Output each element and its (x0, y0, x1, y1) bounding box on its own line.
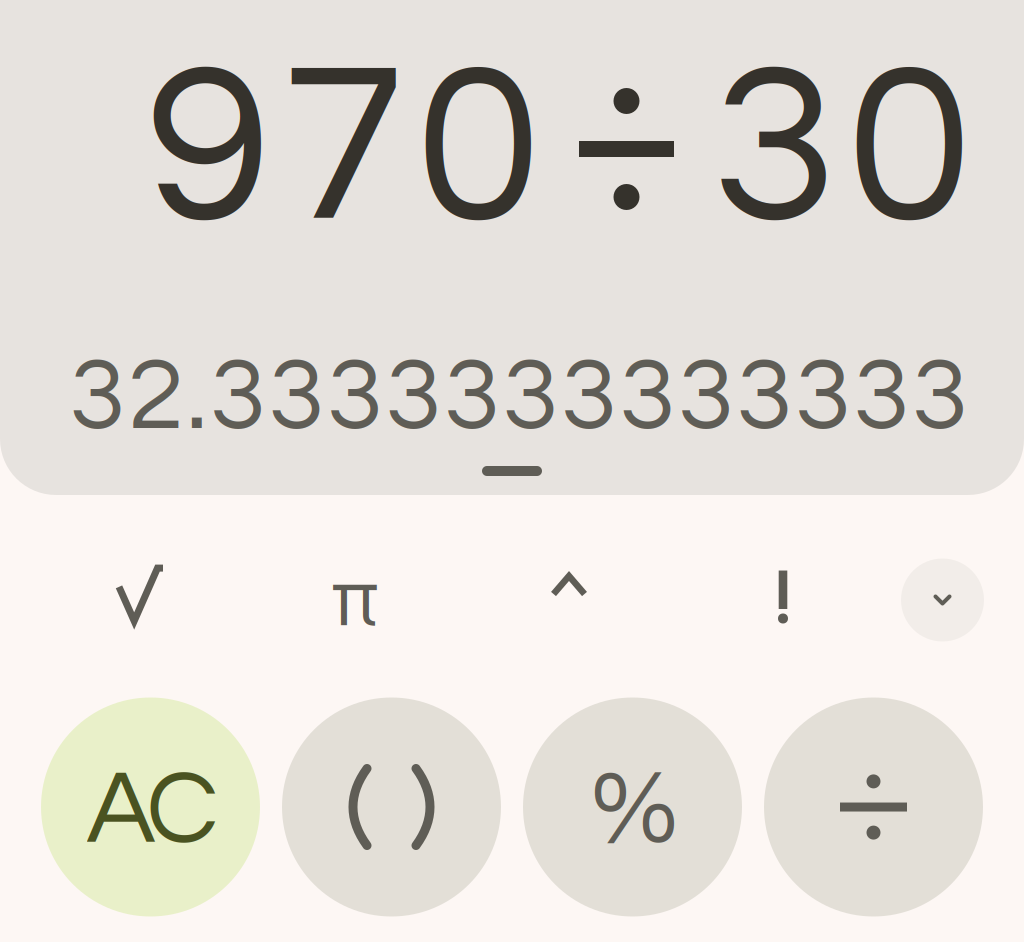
button[interactable]: Pi (248, 540, 462, 660)
staticText: AC (86, 756, 218, 863)
staticText: % (590, 756, 678, 863)
staticText: 32.3333333333333 (69, 345, 968, 449)
button[interactable]: More functions (890, 540, 995, 660)
staticText: π (331, 558, 378, 642)
button[interactable]: Divide (764, 697, 983, 916)
button[interactable]: Percent (523, 697, 742, 916)
button[interactable]: Parentheses (282, 697, 501, 916)
staticText: 30 (712, 32, 972, 266)
staticText: 970 (146, 32, 541, 266)
button[interactable]: Power (462, 540, 676, 660)
button[interactable]: Factorial (676, 540, 890, 660)
button[interactable]: All clear (41, 697, 260, 916)
button[interactable]: Square root (34, 540, 248, 660)
